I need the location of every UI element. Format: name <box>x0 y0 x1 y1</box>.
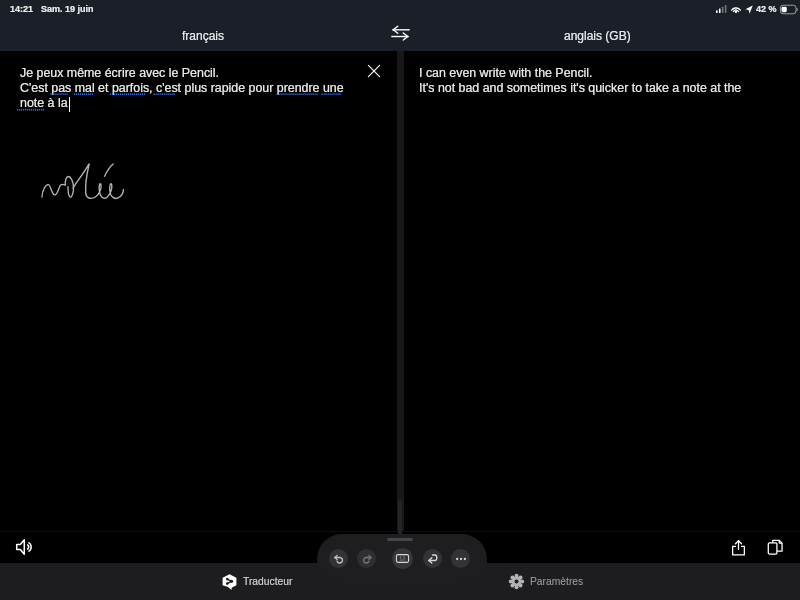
button[interactable]: Swap languages <box>386 19 414 47</box>
staticText: 42 % <box>756 4 777 14</box>
button[interactable]: Keyboard <box>392 548 413 569</box>
button[interactable]: Return <box>423 549 442 568</box>
button[interactable]: anglais (GB) <box>454 20 740 51</box>
button[interactable]: Paramètres <box>509 563 584 600</box>
button[interactable]: More <box>451 549 470 568</box>
button[interactable]: Close <box>361 58 386 83</box>
button[interactable]: français <box>60 20 346 51</box>
button[interactable]: Traducteur <box>222 563 293 600</box>
staticText: Paramètres <box>530 576 584 588</box>
button[interactable]: Undo <box>329 549 348 568</box>
staticText: français <box>182 29 225 42</box>
button[interactable]: Share <box>725 534 751 560</box>
staticText: I can even write with the Pencil. It's n… <box>419 66 742 95</box>
staticText: 14:21 <box>10 4 34 14</box>
staticText: Traducteur <box>243 576 293 588</box>
button[interactable]: Play audio <box>12 534 38 560</box>
staticText: Je peux même écrire avec le Pencil. C'es… <box>20 66 350 110</box>
staticText: Sam. 19 juin <box>41 4 94 14</box>
button[interactable]: Copy <box>762 534 788 560</box>
button[interactable]: Redo <box>357 549 376 568</box>
staticText: anglais (GB) <box>564 29 631 42</box>
